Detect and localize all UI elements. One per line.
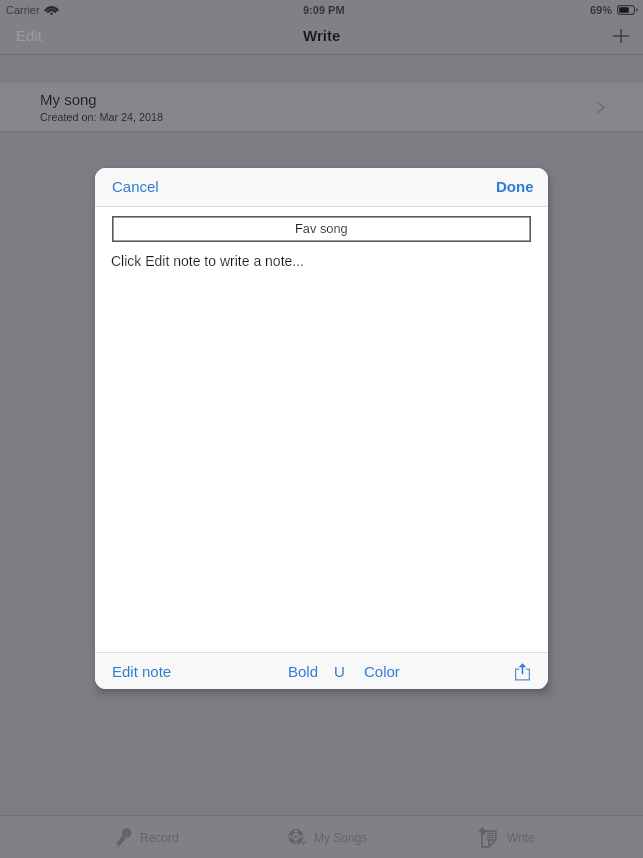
staticText: Bold — [288, 663, 319, 680]
button[interactable]: My Songs — [288, 816, 368, 858]
button[interactable]: U — [334, 663, 345, 680]
staticText: Carrier — [6, 4, 40, 16]
staticText: Record — [140, 831, 179, 844]
staticText: My Songs — [314, 831, 368, 844]
button[interactable]: Share — [513, 662, 532, 681]
staticText: My song — [40, 91, 97, 108]
staticText: Fav song — [295, 221, 348, 235]
button[interactable]: My song — [0, 83, 643, 131]
staticText: 9:09 PM — [303, 4, 345, 16]
staticText: Edit — [16, 27, 42, 44]
button[interactable]: Add — [610, 25, 632, 47]
staticText: 69% — [590, 4, 613, 16]
staticText: Click Edit note to write a note... — [111, 253, 304, 269]
staticText: Cancel — [112, 178, 159, 195]
staticText: Done — [496, 178, 534, 195]
button[interactable]: Edit — [16, 27, 42, 44]
staticText: Color — [364, 663, 400, 680]
button[interactable]: Record — [114, 816, 179, 858]
staticText: Created on: Mar 24, 2018 — [40, 111, 164, 123]
staticText: Write — [303, 27, 341, 44]
button[interactable]: Write — [478, 816, 535, 858]
button[interactable]: Done — [496, 178, 534, 195]
button[interactable]: Cancel — [112, 178, 159, 195]
button[interactable]: Color — [364, 663, 400, 680]
staticText: Write — [507, 831, 535, 844]
staticText: Edit note — [112, 663, 172, 680]
staticText: U — [334, 663, 345, 680]
button[interactable]: Edit note — [112, 663, 172, 680]
button[interactable]: Bold — [288, 663, 319, 680]
